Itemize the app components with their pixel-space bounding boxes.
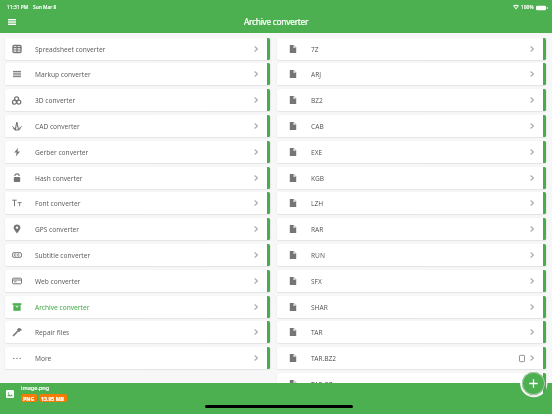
staticText: More <box>35 354 52 363</box>
button[interactable]: CAD converter <box>5 115 270 137</box>
staticText: KGB <box>311 174 325 183</box>
button[interactable]: TAR.GZ <box>277 373 546 395</box>
staticText: Repair files <box>35 328 70 337</box>
button[interactable]: ARJ <box>277 63 546 85</box>
button[interactable]: Menu <box>0 10 24 33</box>
staticText: Gerber converter <box>35 148 89 157</box>
staticText: TAR.BZ2 <box>311 354 337 363</box>
staticText: Archive converter <box>244 16 309 27</box>
button[interactable]: BZ2 <box>277 89 546 111</box>
staticText: 3D converter <box>35 96 76 105</box>
staticText: 11:31 PM <box>7 4 29 11</box>
button[interactable]: 7Z <box>277 38 546 60</box>
staticText: SHAR <box>311 303 328 312</box>
staticText: 13.95 MB <box>41 395 65 402</box>
staticText: 7Z <box>311 45 319 54</box>
staticText: CAB <box>311 122 324 131</box>
button[interactable]: TAR <box>277 321 546 343</box>
staticText: Archive converter <box>35 303 90 312</box>
staticText: PNG <box>23 395 35 402</box>
staticText: image.png <box>21 384 50 392</box>
button[interactable]: RUN <box>277 244 546 266</box>
button[interactable]: TAR.BZ2 <box>277 347 546 369</box>
staticText: Font converter <box>35 199 81 208</box>
button[interactable]: Markup converter <box>5 63 270 85</box>
button[interactable]: Font converter <box>5 192 270 214</box>
button[interactable]: RAR <box>277 218 546 240</box>
staticText: Subtitle converter <box>35 251 91 260</box>
button[interactable]: 3D converter <box>5 89 270 111</box>
button[interactable]: SHAR <box>277 296 546 318</box>
staticText: Hash converter <box>35 174 83 183</box>
staticText: GPS converter <box>35 225 79 234</box>
staticText: RAR <box>311 225 324 234</box>
button[interactable]: Archive converter <box>5 296 270 318</box>
button[interactable]: GPS converter <box>5 218 270 240</box>
button[interactable]: Spreadsheet converter <box>5 38 270 60</box>
staticText: CAD converter <box>35 122 80 131</box>
button[interactable]: Gerber converter <box>5 141 270 163</box>
staticText: Sun Mar 8 <box>33 4 57 11</box>
staticText: ARJ <box>311 70 322 79</box>
staticText: Web converter <box>35 277 81 286</box>
staticText: TAR.GZ <box>311 380 333 389</box>
staticText: Markup converter <box>35 70 91 79</box>
staticText: BZ2 <box>311 96 323 105</box>
button[interactable]: CAB <box>277 115 546 137</box>
staticText: LZH <box>311 199 324 208</box>
staticText: EXE <box>311 148 323 157</box>
button[interactable]: SFX <box>277 270 546 292</box>
staticText: SFX <box>311 277 322 286</box>
staticText: 100% <box>521 4 534 11</box>
button[interactable]: LZH <box>277 192 546 214</box>
button[interactable]: Repair files <box>5 321 270 343</box>
staticText: Spreadsheet converter <box>35 45 106 54</box>
button[interactable]: image.png <box>6 383 67 402</box>
staticText: TAR <box>311 328 323 337</box>
button[interactable]: More <box>5 347 270 369</box>
button[interactable]: Hash converter <box>5 167 270 189</box>
staticText: RUN <box>311 251 325 260</box>
button[interactable]: KGB <box>277 167 546 189</box>
button[interactable]: Add <box>522 372 545 395</box>
button[interactable]: EXE <box>277 141 546 163</box>
button[interactable]: Web converter <box>5 270 270 292</box>
button[interactable]: Subtitle converter <box>5 244 270 266</box>
